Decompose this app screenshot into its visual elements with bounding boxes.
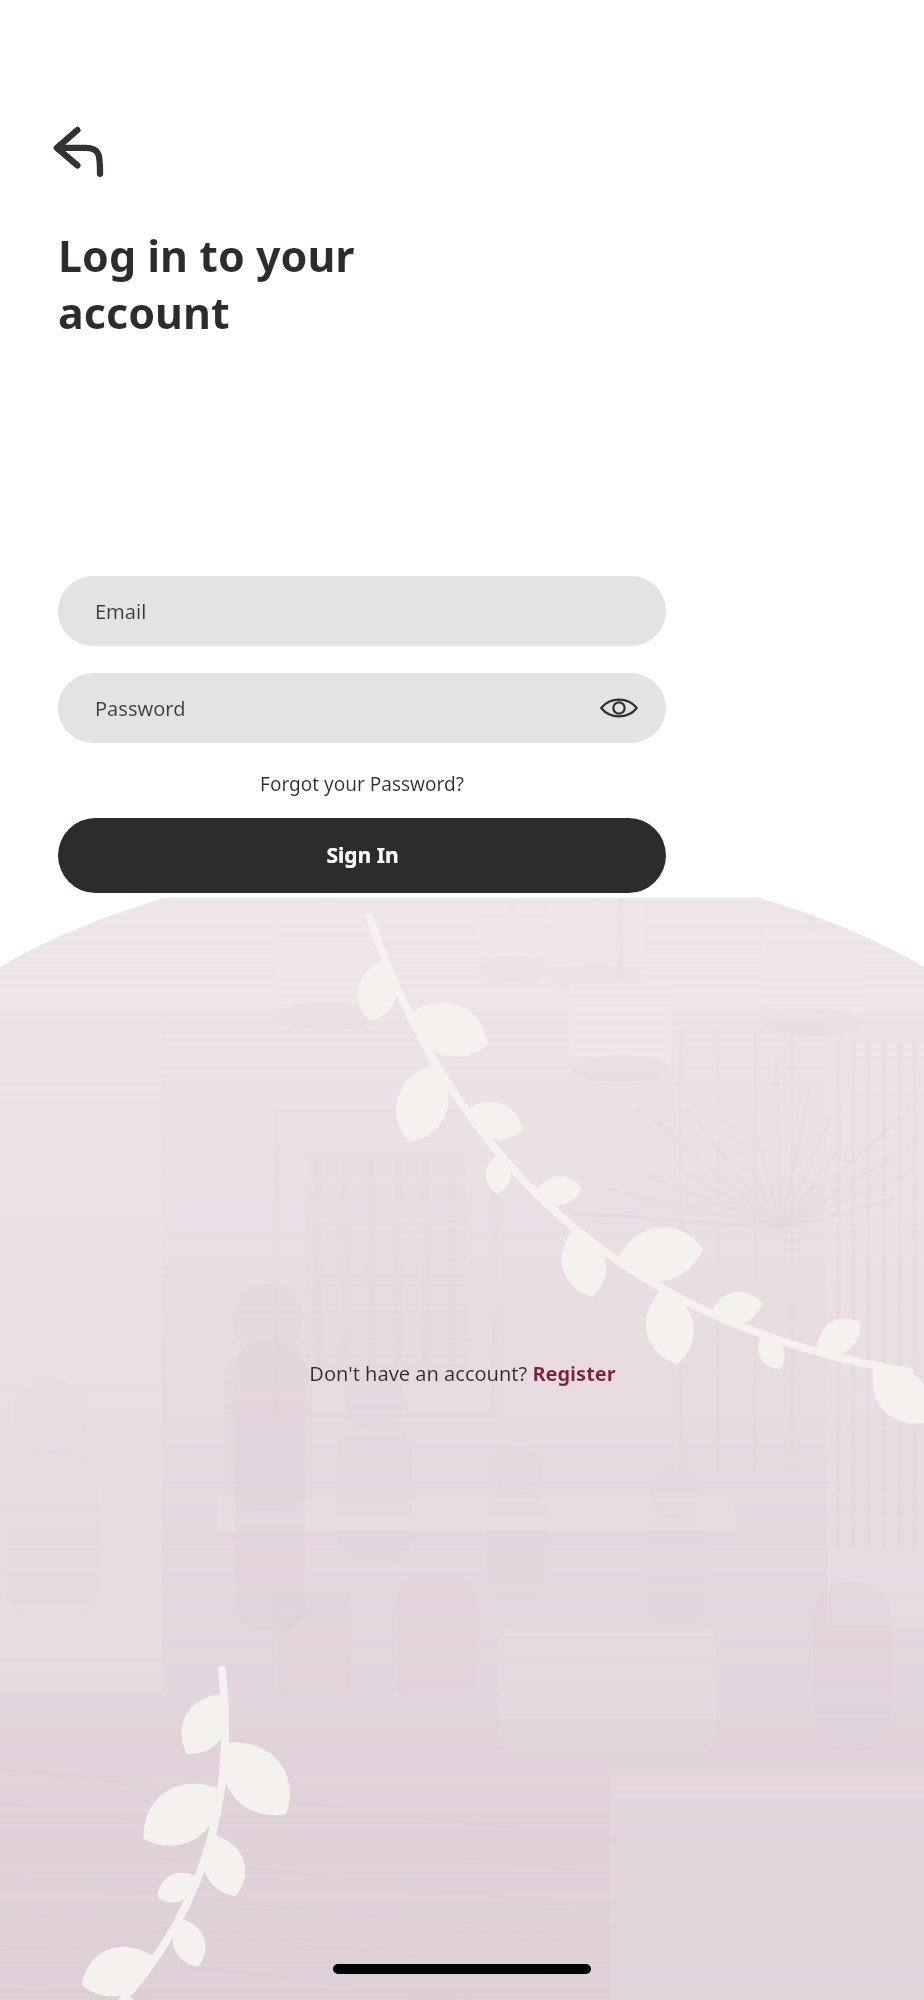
staticText: Sign In [326, 841, 399, 870]
staticText: Email [95, 598, 147, 625]
staticText: Password [95, 695, 186, 722]
staticText: Don't have an account? Register [309, 1360, 616, 1387]
staticText: Log in to your account [58, 226, 355, 341]
button[interactable]: Back [40, 110, 124, 194]
button[interactable]: Email [58, 576, 666, 646]
button[interactable]: Sign In [58, 818, 666, 893]
button[interactable]: Password [58, 673, 666, 743]
button[interactable]: Forgot your Password? [58, 762, 666, 806]
staticText: Forgot your Password? [260, 771, 464, 797]
button[interactable]: Show password [592, 681, 646, 735]
button[interactable]: Don't have an account? Register [0, 1352, 924, 1394]
